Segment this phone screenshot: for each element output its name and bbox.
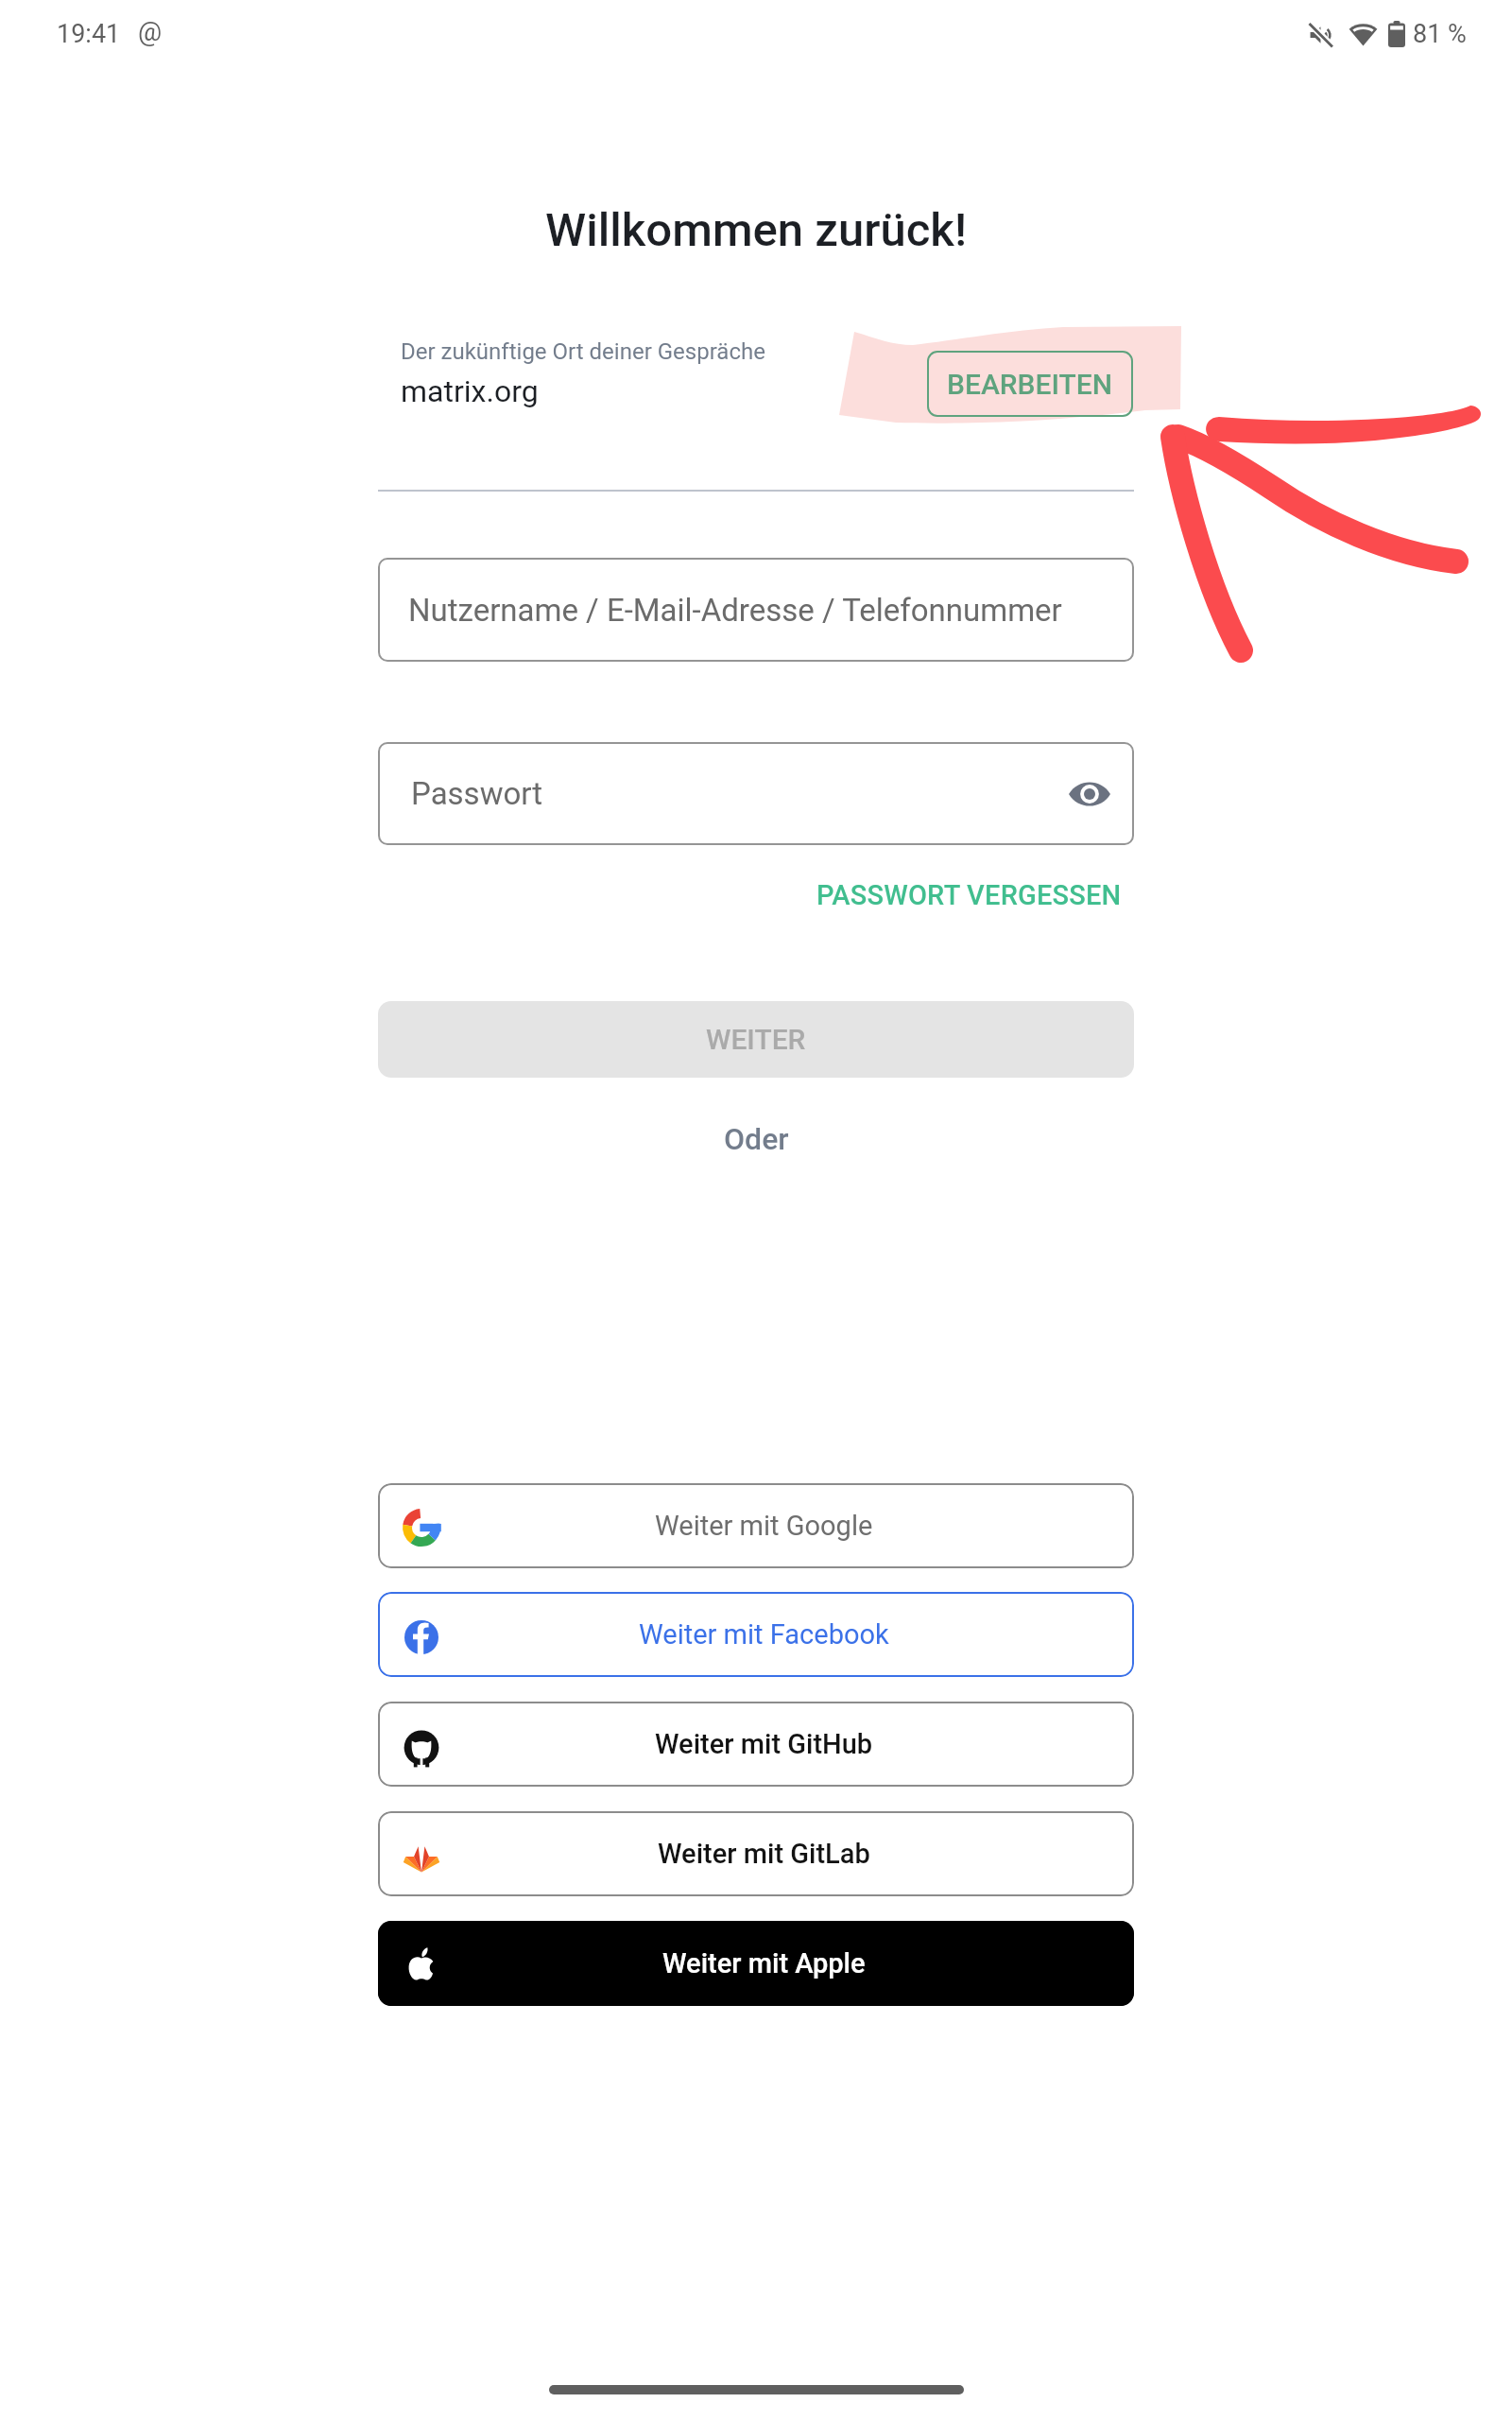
button[interactable]: Weiter mit Apple bbox=[378, 1921, 1134, 2006]
button[interactable]: PASSWORT VERGESSEN bbox=[798, 866, 1141, 925]
button[interactable]: Weiter mit GitHub bbox=[378, 1702, 1134, 1787]
staticText: WEITER bbox=[706, 1023, 806, 1056]
staticText: Nutzername / E-Mail-Adresse / Telefonnum… bbox=[408, 592, 1062, 629]
staticText: matrix.org bbox=[401, 373, 539, 409]
staticText: @ bbox=[138, 16, 163, 47]
staticText: Weiter mit Facebook bbox=[639, 1618, 889, 1651]
staticText: Der zukünftige Ort deiner Gespräche bbox=[401, 338, 765, 365]
other: Benachrichtigung bbox=[131, 12, 169, 50]
staticText: Weiter mit Google bbox=[655, 1510, 873, 1542]
button[interactable]: Weiter mit GitLab bbox=[378, 1811, 1134, 1896]
staticText: Willkommen zurück! bbox=[545, 203, 968, 257]
button[interactable]: BEARBEITEN bbox=[927, 351, 1133, 417]
staticText: BEARBEITEN bbox=[947, 368, 1113, 401]
button[interactable]: Passwort anzeigen bbox=[1057, 762, 1122, 826]
button[interactable]: Weiter mit Facebook bbox=[378, 1592, 1134, 1677]
button[interactable]: Passwort bbox=[378, 742, 1134, 845]
staticText: Weiter mit GitHub bbox=[655, 1728, 873, 1760]
button[interactable]: Weiter mit Google bbox=[378, 1483, 1134, 1568]
button[interactable]: WEITER bbox=[378, 1001, 1134, 1078]
button[interactable]: Nutzername / E-Mail-Adresse / Telefonnum… bbox=[378, 558, 1134, 662]
staticText: PASSWORT VERGESSEN bbox=[816, 879, 1122, 911]
staticText: Weiter mit Apple bbox=[662, 1947, 866, 1979]
staticText: 81 % bbox=[1413, 19, 1467, 49]
staticText: Weiter mit GitLab bbox=[658, 1838, 870, 1870]
staticText: Passwort bbox=[411, 775, 543, 812]
staticText: Oder bbox=[724, 1121, 789, 1157]
staticText: 19:41 bbox=[57, 19, 121, 49]
